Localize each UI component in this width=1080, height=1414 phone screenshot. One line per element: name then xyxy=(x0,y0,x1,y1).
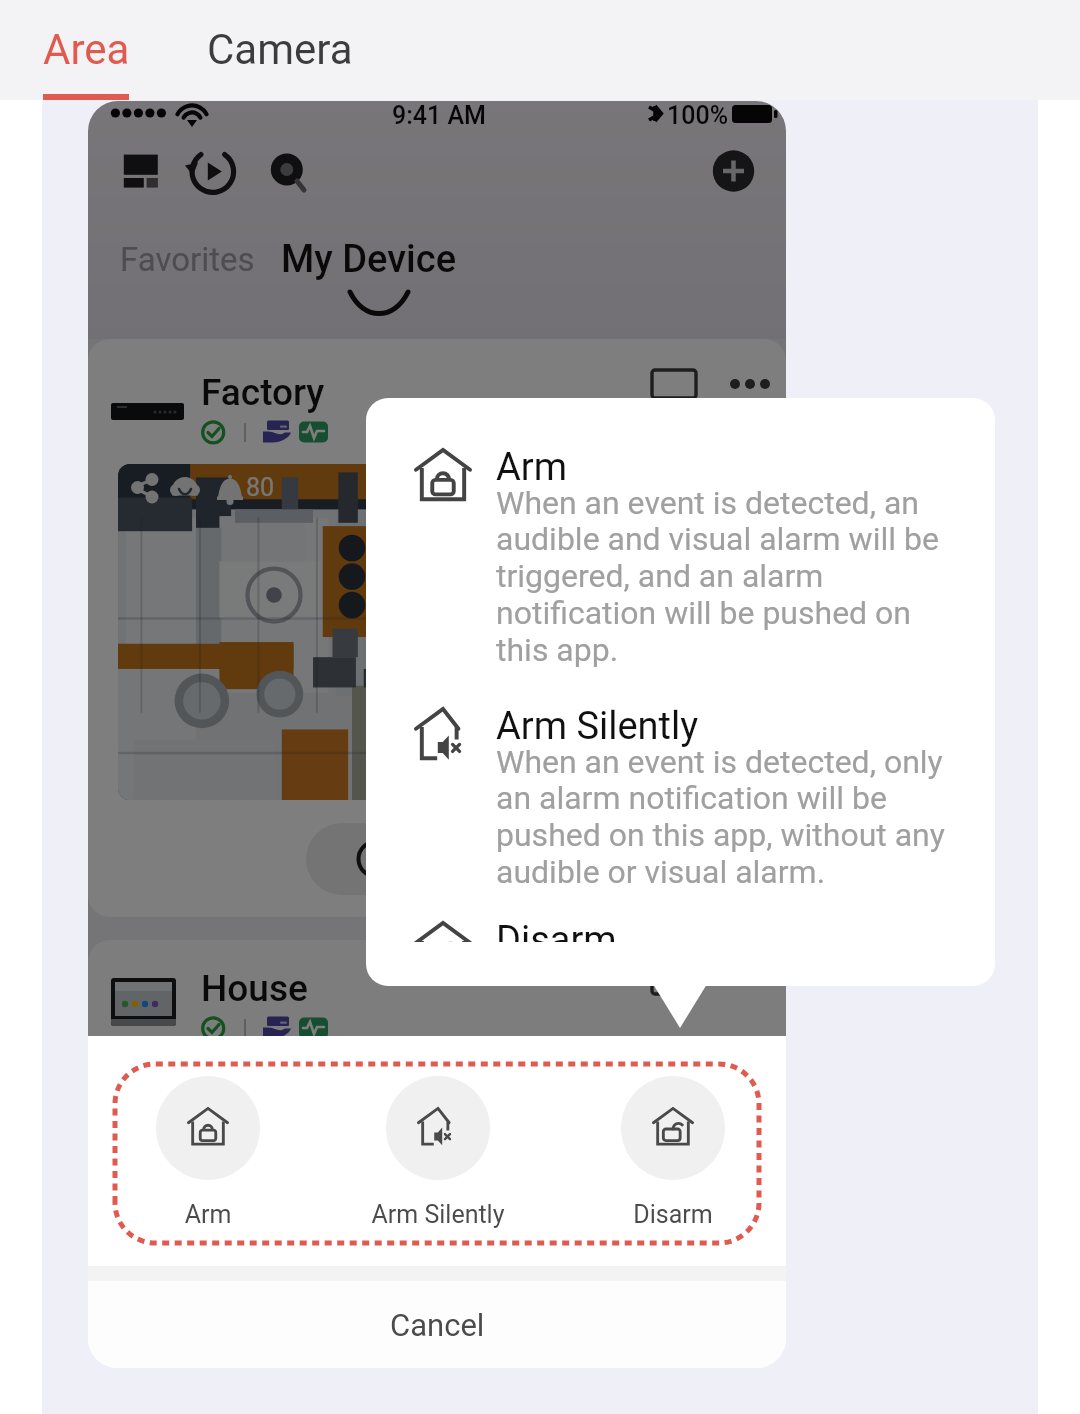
button[interactable]: Area xyxy=(20,0,152,100)
staticText: Camera xyxy=(207,25,353,74)
staticText: 100% xyxy=(667,101,728,130)
button[interactable]: Add device xyxy=(706,149,762,205)
button[interactable]: Arm Silently xyxy=(348,1076,528,1229)
button[interactable]: Search xyxy=(258,149,316,207)
staticText: Arm xyxy=(118,1200,298,1229)
button[interactable]: Arm xyxy=(408,445,988,630)
staticText: Cancel xyxy=(390,1307,485,1343)
staticText: 80 xyxy=(246,473,275,502)
button[interactable]: Camera xyxy=(174,0,386,100)
button[interactable]: Cancel xyxy=(88,1281,786,1368)
staticText: 9:41 AM xyxy=(392,101,487,130)
staticText: Favorites xyxy=(120,240,255,279)
staticText: Factory xyxy=(201,371,325,414)
button[interactable] xyxy=(88,370,786,466)
staticText: House xyxy=(201,967,308,1010)
button[interactable]: Arm xyxy=(118,1076,298,1229)
staticText: When an event is detected, an audible an… xyxy=(496,484,948,669)
button[interactable]: My Device xyxy=(273,229,469,289)
staticText: Disarm xyxy=(496,918,617,942)
button[interactable]: Arm Silently xyxy=(408,704,988,852)
staticText: My Device xyxy=(281,237,457,282)
staticText: When an event is detected, only an alarm… xyxy=(496,743,948,891)
staticText: Arm xyxy=(496,445,567,490)
button[interactable] xyxy=(88,966,786,1062)
staticText: Area xyxy=(43,25,130,74)
staticText: Arm Silently xyxy=(348,1200,528,1229)
button[interactable]: Disarm xyxy=(408,918,988,942)
button[interactable]: Playback xyxy=(184,149,242,207)
button[interactable]: Layout xyxy=(114,149,170,205)
button[interactable]: Disarm xyxy=(583,1076,763,1229)
button[interactable]: Play xyxy=(306,823,466,895)
staticText: Arm Silently xyxy=(496,704,699,749)
staticText: Disarm xyxy=(583,1200,763,1229)
button[interactable]: Favorites xyxy=(112,229,262,289)
